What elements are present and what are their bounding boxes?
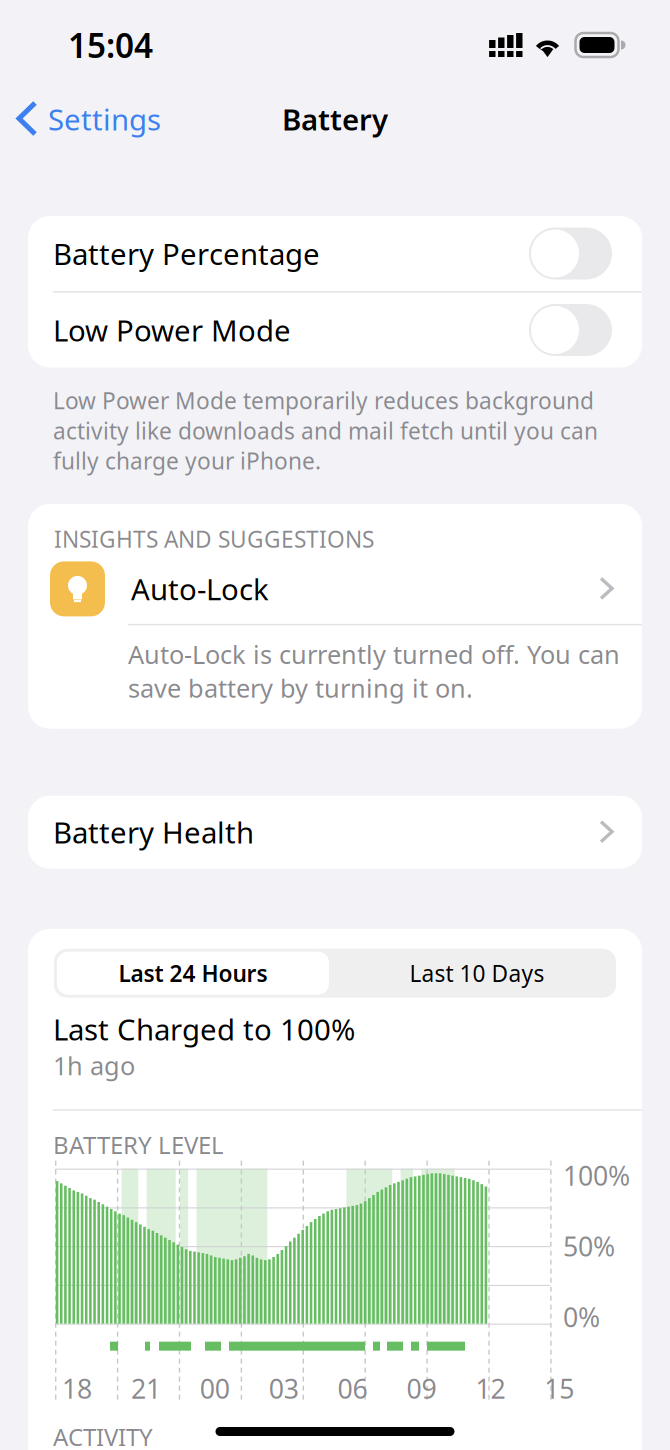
staticText: 15 (544, 1371, 574, 1406)
button[interactable]: Low Power Mode (28, 292, 642, 367)
staticText: Auto-Lock is currently turned off. You c… (128, 637, 620, 705)
staticText: 1h ago (53, 1049, 135, 1082)
staticText: Auto-Lock (131, 569, 269, 608)
staticText: INSIGHTS AND SUGGESTIONS (54, 524, 374, 554)
staticText: 03 (269, 1371, 299, 1406)
staticText: 21 (131, 1371, 161, 1406)
staticText: 12 (475, 1371, 505, 1406)
staticText: Battery Health (53, 813, 254, 852)
staticText: Low Power Mode (53, 310, 291, 349)
staticText: Settings (48, 99, 161, 138)
button[interactable]: Battery Percentage (28, 216, 642, 291)
staticText: 15:04 (68, 23, 153, 67)
staticText: 0% (563, 1299, 600, 1335)
button[interactable]: Auto-Lock (28, 554, 642, 624)
staticText: BATTERY LEVEL (53, 1129, 224, 1161)
button[interactable]: Battery Health (28, 796, 642, 869)
staticText: Low Power Mode temporarily reduces backg… (53, 385, 598, 476)
staticText: Last 10 Days (409, 958, 544, 988)
staticText: Battery Percentage (53, 234, 320, 273)
button[interactable]: Settings (0, 91, 161, 146)
staticText: 09 (406, 1371, 436, 1406)
staticText: ACTIVITY (53, 1421, 153, 1450)
staticText: Last Charged to 100% (53, 1010, 355, 1049)
staticText: 00 (200, 1371, 230, 1406)
staticText: 100% (563, 1158, 630, 1193)
staticText: Battery (282, 99, 388, 138)
staticText: 06 (338, 1371, 368, 1406)
staticText: 18 (62, 1371, 92, 1406)
staticText: 50% (563, 1228, 615, 1264)
button[interactable]: Last 24 Hours (57, 952, 329, 995)
staticText: Last 24 Hours (118, 958, 267, 988)
button[interactable]: Last 10 Days (341, 952, 613, 995)
